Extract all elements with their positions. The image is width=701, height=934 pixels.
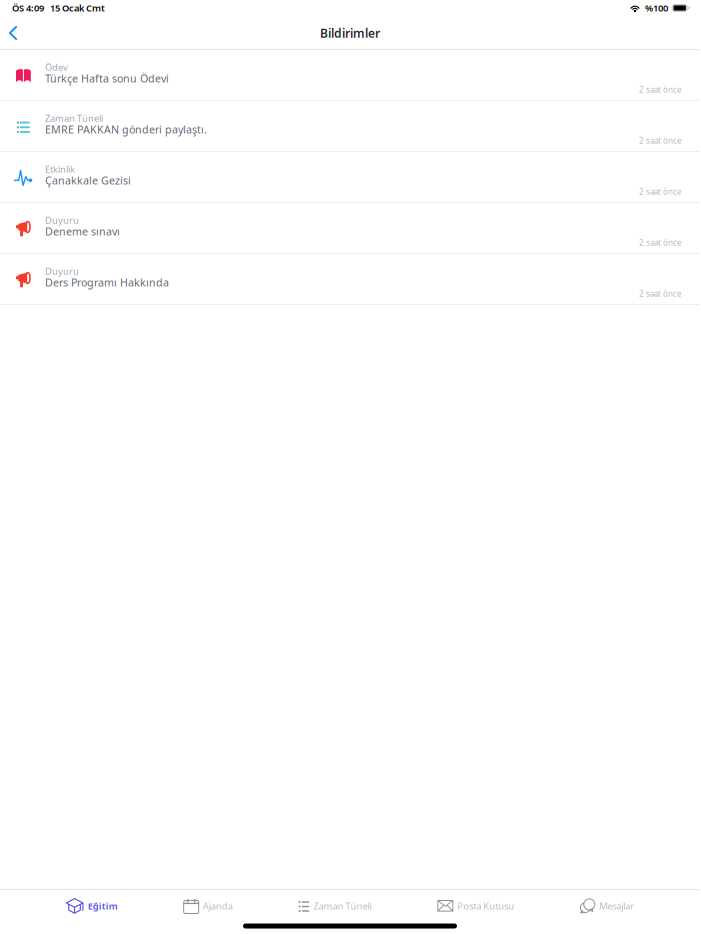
- staticText: 2 saat önce: [639, 186, 682, 197]
- staticText: Zaman Tüneli: [45, 112, 103, 124]
- button[interactable]: Duyuru: [0, 203, 700, 254]
- staticText: EMRE PAKKAN gönderi paylaştı.: [45, 122, 207, 137]
- staticText: %100: [645, 2, 668, 14]
- staticText: Etkinlik: [45, 163, 75, 175]
- staticText: Türkçe Hafta sonu Ödevi: [45, 71, 169, 86]
- staticText: Mesajlar: [599, 900, 634, 912]
- staticText: Posta Kutusu: [457, 900, 514, 912]
- staticText: Zaman Tüneli: [313, 900, 371, 912]
- button[interactable]: Back: [0, 16, 31, 50]
- button[interactable]: Duyuru: [0, 254, 700, 305]
- button[interactable]: Posta Kutusu: [437, 893, 514, 919]
- staticText: Duyuru: [45, 214, 79, 226]
- staticText: 2 saat önce: [639, 135, 682, 146]
- button[interactable]: Etkinlik: [0, 152, 700, 203]
- staticText: Duyuru: [45, 265, 79, 277]
- staticText: 2 saat önce: [639, 237, 682, 248]
- staticText: 15 Ocak Cmt: [50, 2, 105, 14]
- staticText: Ajanda: [203, 900, 233, 912]
- staticText: Eğitim: [88, 900, 118, 912]
- button[interactable]: Eğitim: [66, 893, 118, 919]
- button[interactable]: Ödev: [0, 50, 700, 101]
- staticText: 2 saat önce: [639, 84, 682, 95]
- button[interactable]: Zaman Tüneli: [298, 893, 371, 919]
- staticText: Çanakkale Gezisi: [45, 173, 131, 188]
- staticText: Bildirimler: [320, 25, 380, 41]
- button[interactable]: Mesajlar: [580, 893, 634, 919]
- button[interactable]: Ajanda: [184, 893, 233, 919]
- staticText: ÖS 4:09: [12, 2, 44, 14]
- button[interactable]: Zaman Tüneli: [0, 101, 700, 152]
- staticText: Ders Programı Hakkında: [45, 275, 169, 290]
- staticText: Ödev: [45, 61, 68, 73]
- staticText: 2 saat önce: [639, 288, 682, 299]
- staticText: Deneme sınavı: [45, 224, 120, 239]
